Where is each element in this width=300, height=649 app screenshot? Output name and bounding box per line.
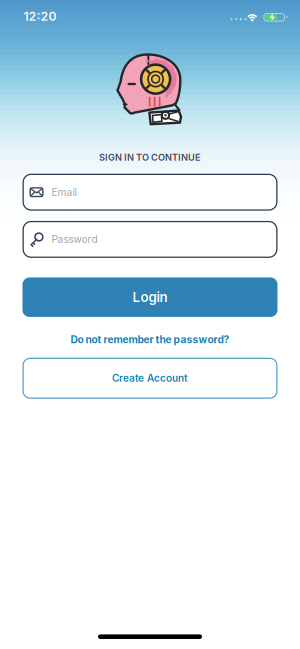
staticText: Password (51, 233, 97, 246)
button[interactable]: Login (22, 277, 277, 317)
button[interactable]: Email (22, 174, 277, 211)
staticText: SIGN IN TO CONTINUE (99, 152, 201, 163)
button[interactable]: Do not remember the password? (70, 333, 229, 346)
staticText: Create Account (112, 372, 188, 384)
button[interactable]: Create Account (22, 358, 277, 399)
staticText: 12:20 (23, 9, 56, 24)
staticText: Email (51, 186, 76, 198)
staticText: Do not remember the password? (70, 333, 229, 346)
staticText: Login (132, 289, 167, 305)
button[interactable]: Password (22, 221, 277, 258)
